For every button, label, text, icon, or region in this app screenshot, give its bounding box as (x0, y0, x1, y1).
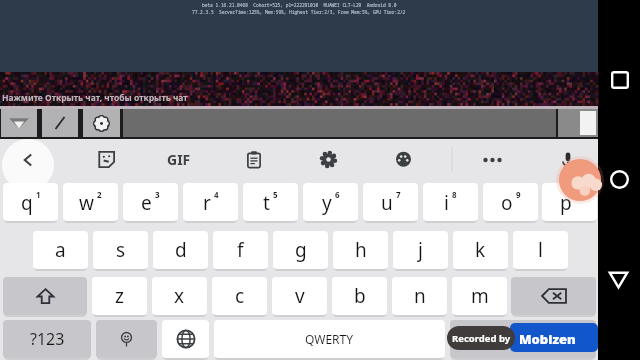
button[interactable]: h (333, 231, 388, 269)
button[interactable]: GIF (149, 139, 209, 180)
staticText: i (444, 190, 449, 216)
staticText: z (115, 283, 124, 309)
staticText: Нажмите Открыть чат, чтобы открыть чат (2, 92, 188, 104)
button[interactable]: k (453, 231, 508, 269)
staticText: beta 1.16.21.0468 Cohort=525, p1=2222910… (202, 2, 397, 8)
button[interactable]: Shift (3, 277, 87, 315)
staticText: 1 (36, 189, 41, 200)
staticText: u (381, 190, 393, 216)
button[interactable]: Sticker (84, 139, 128, 180)
button[interactable]: u (363, 183, 418, 221)
staticText: q (21, 190, 33, 216)
button[interactable]: o (483, 183, 538, 221)
staticText: k (475, 237, 486, 263)
button[interactable]: Expand (1, 109, 37, 137)
staticText: n (414, 283, 426, 309)
button[interactable]: Back (6, 139, 50, 180)
button[interactable]: y (303, 183, 358, 221)
button[interactable]: i (423, 183, 478, 221)
staticText: v (295, 283, 305, 309)
staticText: f (237, 237, 244, 263)
button[interactable]: z (92, 277, 147, 315)
button[interactable]: Voice input (546, 139, 590, 180)
button[interactable]: j (393, 231, 448, 269)
button[interactable]: Recent apps (597, 58, 640, 101)
button[interactable]: ?123 (3, 320, 91, 358)
button[interactable]: Theme (381, 139, 425, 180)
button[interactable]: a (33, 231, 88, 269)
staticText: h (355, 237, 367, 263)
button[interactable]: v (272, 277, 327, 315)
button[interactable]: m (452, 277, 507, 315)
staticText: r (203, 190, 211, 216)
button[interactable]: Clipboard (232, 139, 276, 180)
staticText: p (560, 190, 572, 216)
staticText: 5 (273, 189, 278, 200)
staticText: 3 (155, 189, 160, 200)
button[interactable]: QWERTY (214, 320, 445, 358)
staticText: b (354, 283, 366, 309)
staticText: c (235, 283, 245, 309)
button[interactable]: l (513, 231, 568, 269)
staticText: j (418, 237, 423, 263)
staticText: e (141, 190, 152, 216)
staticText: y (322, 190, 332, 216)
staticText: 9 (516, 189, 521, 200)
staticText: QWERTY (305, 331, 354, 347)
button[interactable]: x (152, 277, 207, 315)
staticText: a (55, 237, 66, 263)
staticText: l (538, 237, 543, 263)
staticText: s (116, 237, 126, 263)
button[interactable]: Home (597, 158, 640, 201)
button[interactable]: e (123, 183, 178, 221)
staticText: o (501, 190, 513, 216)
button[interactable]: Change language (162, 320, 209, 358)
staticText: GIF (167, 150, 191, 169)
staticText: Mobizen (519, 330, 576, 348)
staticText: 4 (214, 189, 219, 200)
staticText: 6 (335, 189, 340, 200)
button[interactable]: Emoji (96, 320, 157, 358)
staticText: 7 (396, 189, 401, 200)
staticText: 0 (575, 189, 580, 200)
button[interactable]: c (212, 277, 267, 315)
staticText: ?123 (30, 328, 65, 350)
button[interactable]: More options (470, 139, 514, 180)
button[interactable]: Edit (42, 109, 78, 137)
button[interactable]: Settings (306, 139, 350, 180)
button[interactable]: r (183, 183, 238, 221)
staticText: g (295, 237, 307, 263)
button[interactable]: d (153, 231, 208, 269)
staticText: t (263, 190, 270, 216)
button[interactable]: b (332, 277, 387, 315)
staticText: Recorded by (452, 332, 511, 345)
button[interactable]: q (3, 183, 58, 221)
staticText: d (175, 237, 187, 263)
staticText: 2 (97, 189, 102, 200)
button[interactable]: f (213, 231, 268, 269)
button[interactable]: w (63, 183, 118, 221)
button[interactable]: Send (558, 109, 598, 137)
staticText: m (471, 283, 489, 309)
button[interactable]: n (392, 277, 447, 315)
button[interactable]: p (542, 183, 597, 221)
button[interactable]: s (93, 231, 148, 269)
button[interactable]: g (273, 231, 328, 269)
staticText: 8 (452, 189, 457, 200)
button[interactable]: Emotes (83, 109, 120, 137)
button[interactable]: t (243, 183, 298, 221)
staticText: x (174, 283, 185, 309)
staticText: 77.2.3.5 ServerTime:125%, Mem:59%, Highe… (192, 9, 406, 15)
button[interactable]: Enter (450, 320, 596, 358)
button[interactable]: Back (597, 258, 640, 301)
staticText: w (79, 190, 94, 216)
button[interactable]: Backspace (511, 277, 596, 315)
